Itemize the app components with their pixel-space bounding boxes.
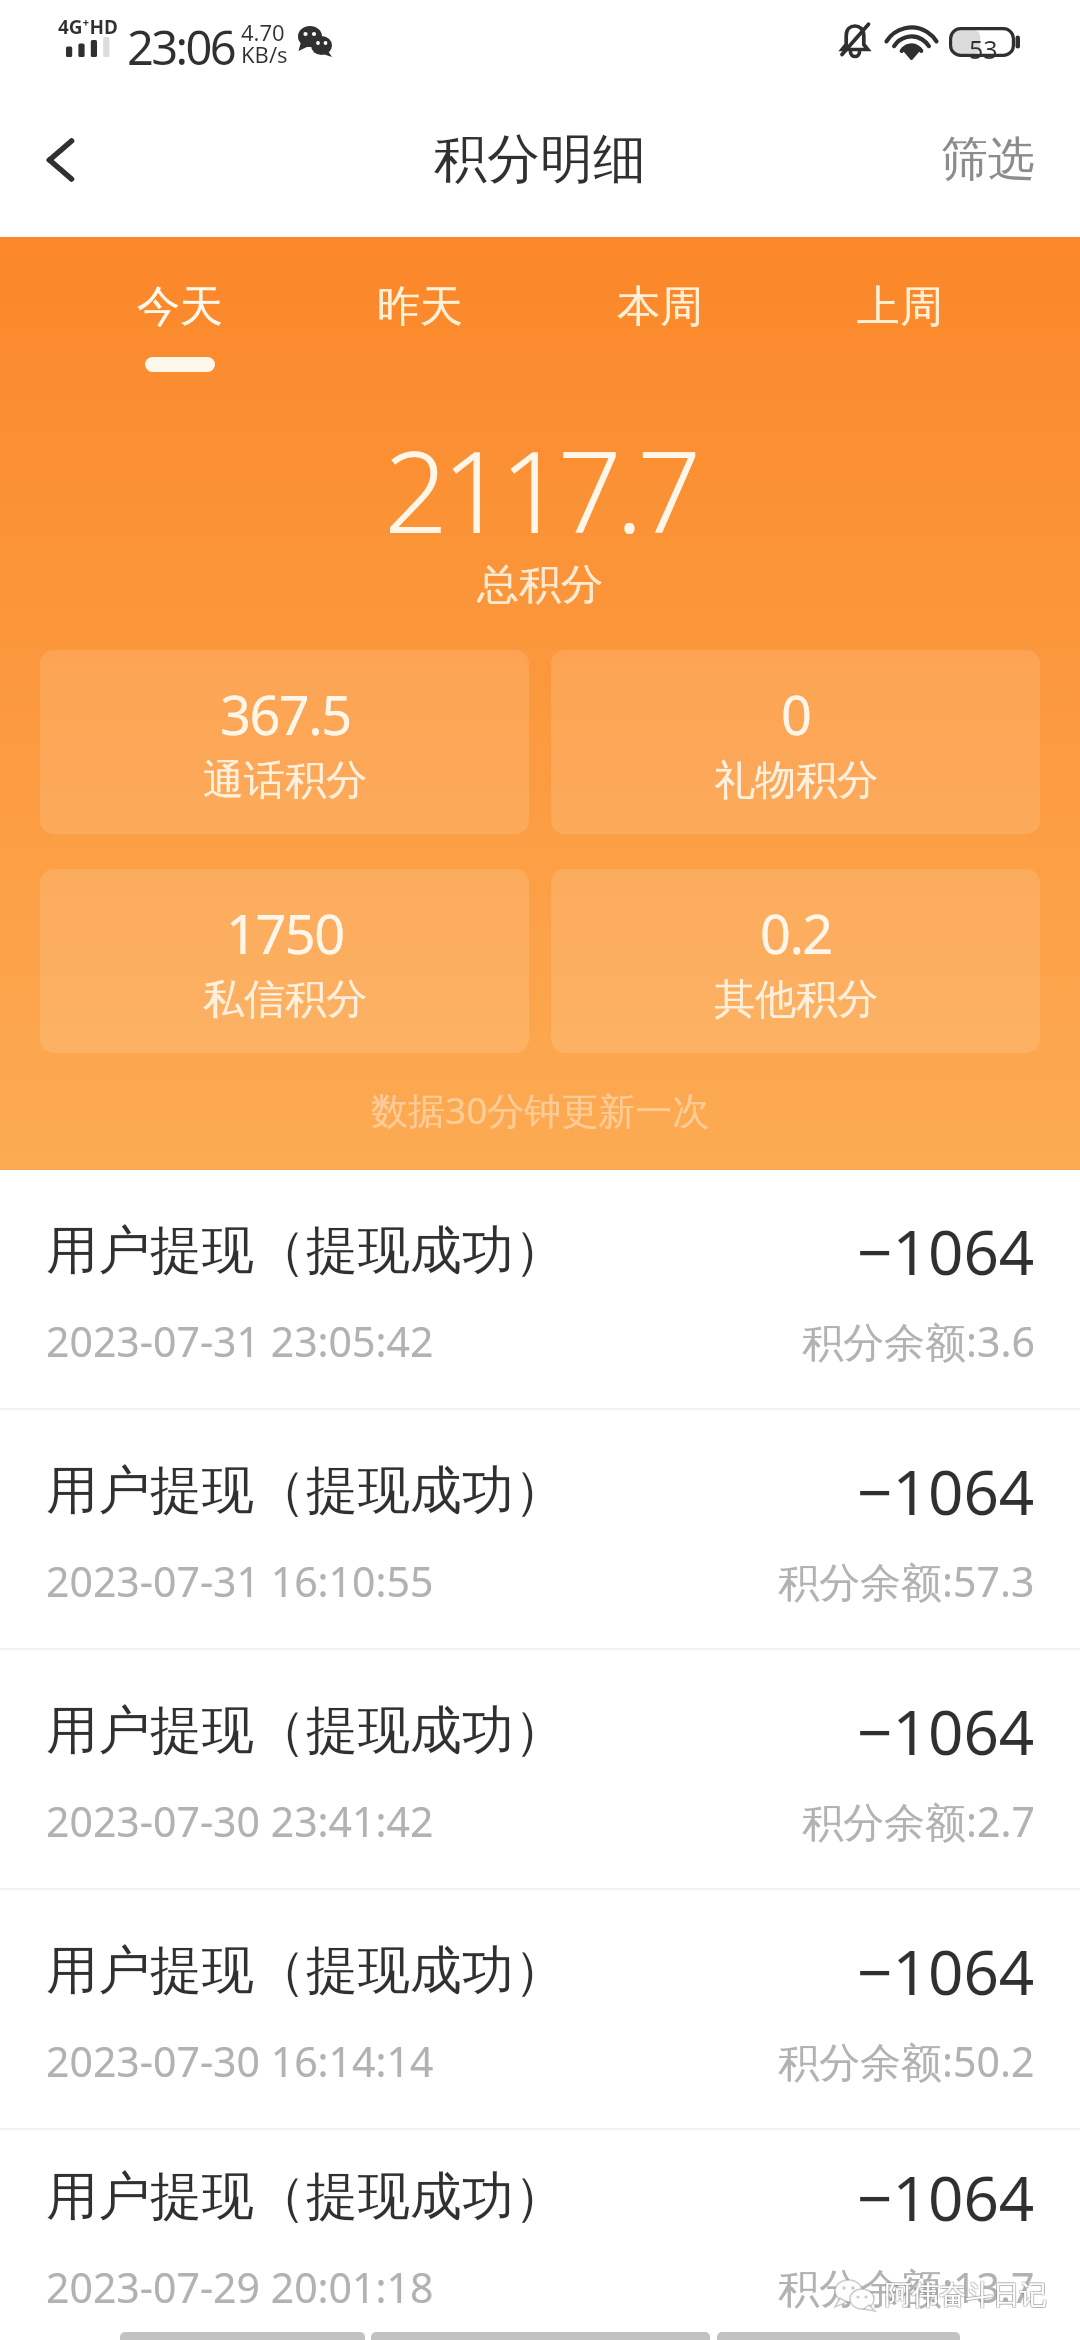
staticText: 其他积分 (714, 974, 878, 1026)
staticText: KB/s (241, 39, 288, 69)
button[interactable]: 今天 (60, 280, 300, 372)
button[interactable]: 0.2 (551, 869, 1040, 1053)
staticText: 阿伟奋斗日记 (886, 2279, 1048, 2313)
staticText: −1064 (857, 1689, 1035, 1773)
staticText: −1064 (857, 1209, 1035, 1293)
staticText: 今天 (137, 280, 223, 334)
button[interactable]: Back (717, 2320, 960, 2340)
button[interactable]: 用户提现（提现成功） (0, 1650, 1080, 1888)
button[interactable]: 1750 (40, 869, 529, 1053)
button[interactable]: 上周 (780, 280, 1020, 357)
button[interactable]: Home (371, 2320, 710, 2340)
staticText: 阿伟奋斗日记 (885, 2278, 1047, 2312)
button[interactable]: 本周 (540, 280, 780, 357)
staticText: 总积分 (477, 559, 603, 612)
staticText: 367.5 (220, 677, 351, 751)
staticText: 积分余额:13.7 (778, 2259, 1035, 2315)
staticText: 4G⁺HD (58, 14, 118, 40)
staticText: 2023-07-31 16:10:55 (46, 1553, 778, 1609)
button[interactable]: 筛选 (896, 100, 1080, 237)
staticText: 私信积分 (203, 974, 367, 1026)
staticText: 昨天 (377, 280, 463, 334)
staticText: 通话积分 (203, 755, 367, 807)
staticText: −1064 (857, 1449, 1035, 1533)
staticText: 0.2 (760, 896, 832, 970)
staticText: 用户提现（提现成功） (46, 1218, 857, 1284)
staticText: 23:06 (127, 15, 235, 79)
staticText: 阿伟奋斗日记 (884, 2279, 1046, 2313)
staticText: 1750 (226, 896, 344, 970)
staticText: 积分余额:57.3 (778, 1553, 1035, 1609)
button[interactable]: 367.5 (40, 650, 529, 834)
staticText: 礼物积分 (714, 755, 878, 807)
button[interactable]: 用户提现（提现成功） (0, 2130, 1080, 2340)
staticText: 本周 (617, 280, 703, 334)
staticText: 用户提现（提现成功） (46, 1458, 857, 1524)
staticText: 2023-07-30 23:41:42 (46, 1793, 802, 1849)
staticText: 积分余额:2.7 (802, 1793, 1035, 1849)
staticText: −1064 (857, 2155, 1035, 2239)
staticText: 2023-07-29 20:01:18 (46, 2259, 778, 2315)
staticText: 用户提现（提现成功） (46, 2164, 857, 2230)
staticText: 筛选 (941, 130, 1035, 189)
staticText: 4.70 (241, 17, 285, 47)
staticText: 上周 (857, 280, 943, 334)
staticText: 用户提现（提现成功） (46, 1698, 857, 1764)
staticText: 用户提现（提现成功） (46, 1938, 857, 2004)
staticText: 0 (781, 677, 811, 751)
button[interactable]: 用户提现（提现成功） (0, 1170, 1080, 1408)
staticText: 阿伟奋斗日记 (886, 2277, 1048, 2311)
staticText: 积分余额:3.6 (802, 1313, 1035, 1369)
staticText: −1064 (857, 1929, 1035, 2013)
staticText: 53 (969, 32, 998, 62)
button[interactable]: 0 (551, 650, 1040, 834)
staticText: 2117.7 (384, 413, 696, 566)
staticText: 数据30分钟更新一次 (371, 1084, 710, 1135)
staticText: 2023-07-31 23:05:42 (46, 1313, 802, 1369)
staticText: 阿伟奋斗日记 (884, 2277, 1046, 2311)
button[interactable]: 用户提现（提现成功） (0, 1890, 1080, 2128)
button[interactable]: Recents (120, 2320, 365, 2340)
staticText: 积分余额:50.2 (778, 2033, 1035, 2089)
button[interactable]: 昨天 (300, 280, 540, 357)
staticText: 积分明细 (434, 126, 646, 193)
button[interactable]: 用户提现（提现成功） (0, 1410, 1080, 1648)
staticText: 2023-07-30 16:14:14 (46, 2033, 778, 2089)
button[interactable]: Back (0, 100, 120, 237)
